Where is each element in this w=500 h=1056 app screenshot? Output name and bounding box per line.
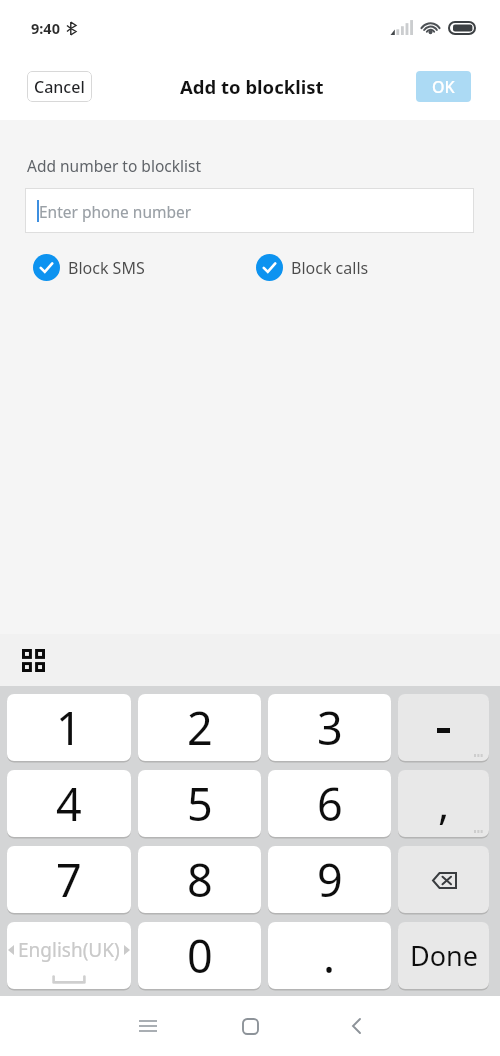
staticText: Add to blocklist [180,74,324,99]
staticText: English(UK) [18,937,120,963]
staticText: Cancel [34,76,85,98]
button[interactable]: Block calls [256,254,369,281]
button[interactable]: 0 [138,922,261,989]
button[interactable]: Enter phone number [25,188,474,233]
button[interactable]: 8 [138,846,261,913]
button[interactable]: Dash [398,694,489,761]
button[interactable]: 2 [138,694,261,761]
button[interactable]: Block SMS [33,254,145,281]
button[interactable]: Backspace [398,846,489,913]
staticText: . [323,925,336,986]
button[interactable]: Switch input language [7,922,131,989]
staticText: Add number to blocklist [27,155,202,176]
button[interactable]: Back [332,1002,380,1050]
button[interactable]: , [398,770,489,837]
staticText: 5 [187,773,213,834]
button[interactable]: 9 [268,846,391,913]
button[interactable]: Recents [124,1002,172,1050]
staticText: 0 [187,925,213,986]
button[interactable]: . [268,922,391,989]
staticText: 6 [317,773,343,834]
staticText: Block calls [291,257,369,279]
button[interactable]: 3 [268,694,391,761]
button[interactable]: 5 [138,770,261,837]
staticText: Enter phone number [39,201,192,222]
other: Backspace [427,863,461,897]
button[interactable]: 6 [268,770,391,837]
staticText: Done [410,937,478,974]
staticText: 8 [187,849,213,910]
staticText: 9 [317,849,343,910]
staticText: 7 [56,849,82,910]
button[interactable]: Home [226,1002,274,1050]
staticText: 3 [317,697,343,758]
button[interactable]: 1 [7,694,131,761]
button[interactable]: OK [416,71,471,102]
staticText: , [438,775,450,832]
button[interactable]: 7 [7,846,131,913]
staticText: OK [432,76,455,98]
staticText: 4 [56,773,82,834]
button[interactable]: Done [398,922,489,989]
staticText: 1 [56,697,82,758]
staticText: 9:40 [31,18,60,38]
button[interactable]: Switch keyboard [20,647,47,674]
staticText: Block SMS [68,257,145,279]
button[interactable]: Cancel [27,71,92,102]
button[interactable]: 4 [7,770,131,837]
staticText: 2 [187,697,213,758]
